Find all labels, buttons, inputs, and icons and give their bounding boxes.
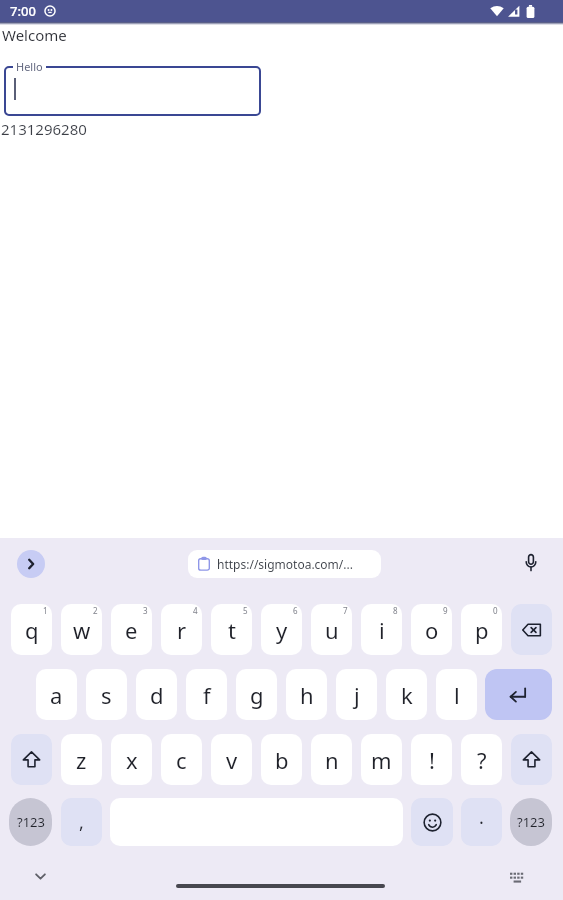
staticText: t xyxy=(228,615,236,645)
staticText: u xyxy=(325,615,339,645)
staticText: 2 xyxy=(93,605,98,616)
button[interactable]: k xyxy=(386,669,427,720)
staticText: 5 xyxy=(243,605,248,616)
button[interactable]: https://sigmotoa.com/... xyxy=(188,550,381,578)
button[interactable] xyxy=(507,867,527,887)
staticText: j xyxy=(354,680,360,710)
staticText: w xyxy=(73,615,91,645)
button[interactable]: b xyxy=(261,734,302,785)
button[interactable]: n xyxy=(311,734,352,785)
staticText: 7:00 xyxy=(10,2,36,20)
staticText: q xyxy=(25,615,39,645)
button[interactable]: q xyxy=(11,604,52,655)
button[interactable]: f xyxy=(186,669,227,720)
button[interactable]: t xyxy=(211,604,252,655)
staticText: k xyxy=(401,680,413,710)
button[interactable] xyxy=(11,734,52,785)
button[interactable]: ! xyxy=(411,734,452,785)
staticText: e xyxy=(125,615,138,645)
staticText: 6 xyxy=(293,605,298,616)
staticText: ?123 xyxy=(17,813,45,831)
staticText: https://sigmotoa.com/... xyxy=(217,556,353,572)
button[interactable] xyxy=(519,551,543,575)
staticText: l xyxy=(454,680,460,710)
button[interactable] xyxy=(176,884,385,888)
staticText: x xyxy=(126,745,138,775)
staticText: o xyxy=(425,615,439,645)
staticText: b xyxy=(275,745,289,775)
button[interactable]: l xyxy=(436,669,477,720)
button[interactable]: a xyxy=(36,669,77,720)
button[interactable]: j xyxy=(336,669,377,720)
staticText: a xyxy=(50,680,63,710)
button[interactable]: g xyxy=(236,669,277,720)
staticText: i xyxy=(379,615,385,645)
button[interactable]: y xyxy=(261,604,302,655)
staticText: d xyxy=(150,680,164,710)
staticText: Welcome xyxy=(2,25,67,45)
button[interactable]: w xyxy=(61,604,102,655)
button[interactable]: r xyxy=(161,604,202,655)
button[interactable] xyxy=(411,798,453,846)
button[interactable]: ?123 xyxy=(9,798,52,846)
button[interactable] xyxy=(4,66,261,116)
button[interactable]: , xyxy=(61,798,102,846)
button[interactable] xyxy=(17,550,45,578)
staticText: 2131296280 xyxy=(1,119,87,139)
button[interactable]: i xyxy=(361,604,402,655)
staticText: f xyxy=(203,680,211,710)
staticText: h xyxy=(300,680,314,710)
button[interactable] xyxy=(511,604,552,655)
button[interactable]: · xyxy=(461,798,502,846)
button[interactable]: d xyxy=(136,669,177,720)
staticText: 8 xyxy=(393,605,398,616)
button[interactable]: p xyxy=(461,604,502,655)
staticText: ? xyxy=(477,745,487,775)
button[interactable]: h xyxy=(286,669,327,720)
staticText: 3 xyxy=(143,605,148,616)
staticText: p xyxy=(475,615,489,645)
staticText: n xyxy=(325,745,339,775)
staticText: ! xyxy=(429,745,435,775)
staticText: ?123 xyxy=(517,813,545,831)
button[interactable]: m xyxy=(361,734,402,785)
staticText: v xyxy=(226,745,238,775)
button[interactable]: o xyxy=(411,604,452,655)
staticText: y xyxy=(276,615,288,645)
button[interactable]: ? xyxy=(461,734,502,785)
staticText: c xyxy=(176,745,187,775)
staticText: z xyxy=(76,745,87,775)
staticText: s xyxy=(101,680,112,710)
button[interactable]: s xyxy=(86,669,127,720)
staticText: g xyxy=(250,680,264,710)
staticText: 0 xyxy=(493,605,498,616)
button[interactable]: u xyxy=(311,604,352,655)
staticText: 4 xyxy=(193,605,198,616)
staticText: 1 xyxy=(43,605,48,616)
button[interactable]: z xyxy=(61,734,102,785)
staticText: 9 xyxy=(443,605,448,616)
button[interactable]: v xyxy=(211,734,252,785)
button[interactable]: c xyxy=(161,734,202,785)
button[interactable] xyxy=(30,866,50,886)
button[interactable] xyxy=(511,734,552,785)
staticText: Hello xyxy=(16,59,43,74)
button[interactable] xyxy=(485,669,552,720)
button[interactable]: ?123 xyxy=(510,798,552,846)
staticText: 7 xyxy=(343,605,348,616)
button[interactable]: e xyxy=(111,604,152,655)
staticText: r xyxy=(177,615,187,645)
staticText: · xyxy=(479,810,484,835)
staticText: m xyxy=(371,745,392,775)
button[interactable]: x xyxy=(111,734,152,785)
staticText: , xyxy=(79,810,84,835)
